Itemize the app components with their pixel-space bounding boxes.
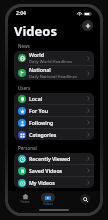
button[interactable]: Saved Videos (14, 165, 94, 176)
staticText: Videos (43, 202, 53, 206)
button[interactable]: Videos (40, 193, 56, 206)
button[interactable]: Search (80, 194, 90, 204)
staticText: Saved Videos (29, 167, 63, 174)
staticText: Local (29, 95, 43, 102)
staticText: Recently Viewed (29, 155, 71, 162)
button[interactable]: Following (14, 117, 94, 128)
staticText: Daily National Headlines (29, 74, 78, 80)
staticText: Home (20, 200, 30, 204)
staticText: National (29, 66, 51, 73)
staticText: My Videos (29, 179, 55, 186)
staticText: 2:04 (16, 10, 26, 17)
button[interactable]: Recently Viewed (14, 153, 94, 164)
staticText: Users (18, 85, 31, 91)
button[interactable]: My Videos (14, 177, 94, 188)
staticText: Following (29, 119, 54, 126)
staticText: Videos (14, 22, 57, 40)
staticText: For You (29, 107, 48, 114)
staticText: Categories (29, 131, 57, 138)
button[interactable]: Categories (14, 129, 94, 140)
button[interactable]: Home (18, 193, 32, 204)
button[interactable]: National (14, 66, 94, 80)
button[interactable]: World (14, 51, 94, 65)
staticText: News (18, 43, 30, 49)
staticText: World (29, 51, 45, 58)
staticText: Daily World Headlines (29, 59, 73, 65)
staticText: Personal (18, 145, 37, 151)
button[interactable]: For You (14, 105, 94, 116)
button[interactable]: Add (82, 20, 93, 31)
button[interactable]: Local (14, 93, 94, 104)
